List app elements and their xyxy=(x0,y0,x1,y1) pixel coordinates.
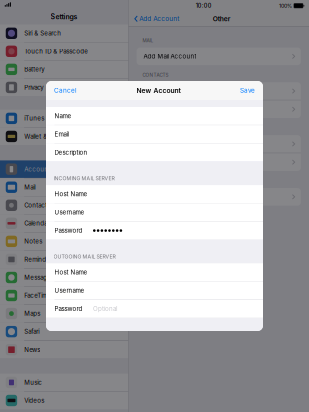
staticText: Username xyxy=(54,209,84,216)
staticText: Save xyxy=(240,87,255,94)
button[interactable]: Mail xyxy=(0,178,128,196)
staticText: Reminders xyxy=(24,256,55,263)
button[interactable]: Messages xyxy=(0,269,128,286)
staticText: Safari xyxy=(24,328,39,335)
button[interactable]: Maps xyxy=(0,305,128,322)
button[interactable]: News xyxy=(0,341,128,358)
staticText: Password xyxy=(54,305,82,312)
button[interactable]: Add Account xyxy=(129,13,179,25)
button[interactable]: Calendar xyxy=(0,215,128,232)
staticText: Contacts xyxy=(24,202,50,209)
button[interactable]: Add CardDAV Account xyxy=(137,100,301,118)
staticText: MAIL xyxy=(143,38,154,43)
button[interactable]: iTunes & App Store xyxy=(0,110,128,127)
button[interactable]: Add macOS Server Account xyxy=(137,188,301,206)
button[interactable]: Music xyxy=(0,374,128,391)
button[interactable]: Contacts xyxy=(0,196,128,214)
staticText: Host Name xyxy=(54,268,87,276)
staticText: Videos xyxy=(24,397,44,404)
button[interactable]: Add LDAP Account xyxy=(137,82,301,100)
button[interactable]: FaceTime xyxy=(0,287,128,304)
staticText: Privacy xyxy=(24,84,43,91)
staticText: Add CardDAV Account xyxy=(143,105,210,113)
button[interactable]: Safari xyxy=(0,323,128,340)
button[interactable]: Siri & Search xyxy=(0,24,128,42)
button[interactable]: Accounts & Passwords xyxy=(0,160,128,178)
staticText: Messages xyxy=(24,274,54,281)
staticText: Touch ID & Passcode xyxy=(24,48,88,55)
button[interactable]: Add Subscribed Calendar xyxy=(137,153,301,171)
button[interactable]: Add Mail Account xyxy=(137,47,301,65)
button[interactable]: Touch ID & Passcode xyxy=(0,42,128,60)
staticText: Add CalDAV Account xyxy=(143,140,205,148)
button[interactable]: Battery xyxy=(0,61,128,78)
button[interactable]: Videos xyxy=(0,392,128,409)
staticText: Name xyxy=(54,112,71,120)
button[interactable]: Wallet & Apple Pay xyxy=(0,128,128,145)
staticText: Email xyxy=(54,130,68,138)
staticText: Add Account xyxy=(139,15,179,23)
staticText: Mail xyxy=(24,183,35,191)
staticText: Music xyxy=(24,379,42,386)
button[interactable]: Reminders xyxy=(0,251,128,268)
staticText: CONTACTS xyxy=(143,72,169,78)
staticText: FaceTime xyxy=(24,292,51,299)
staticText: Wallet & Apple Pay xyxy=(24,133,78,140)
staticText: 100% xyxy=(279,2,292,9)
staticText: INCOMING MAIL SERVER xyxy=(53,175,114,181)
staticText: Cancel xyxy=(54,87,77,94)
staticText: OUTGOING MAIL SERVER xyxy=(53,253,115,260)
staticText: News xyxy=(24,346,40,353)
button[interactable]: Add CalDAV Account xyxy=(137,135,301,153)
staticText: Host Name xyxy=(54,190,87,198)
staticText: Accounts & Passwords xyxy=(24,165,92,173)
button[interactable]: Notes xyxy=(0,233,128,250)
staticText: Username xyxy=(54,287,84,294)
staticText: Other xyxy=(213,15,231,23)
staticText: Siri & Search xyxy=(24,30,61,37)
staticText: Description xyxy=(54,149,87,156)
staticText: Password xyxy=(54,227,82,234)
staticText: Add LDAP Account xyxy=(143,87,200,95)
staticText: 10:00 xyxy=(196,2,212,9)
staticText: Maps xyxy=(24,310,40,317)
staticText: Optional xyxy=(93,305,117,312)
staticText: Add Subscribed Calendar xyxy=(143,158,218,166)
button[interactable]: Save xyxy=(240,83,263,98)
staticText: Add Mail Account xyxy=(143,53,196,60)
staticText: Notes xyxy=(24,238,42,245)
button[interactable]: Cancel xyxy=(46,83,77,98)
button[interactable]: Privacy xyxy=(0,79,128,96)
staticText: New Account xyxy=(136,86,180,95)
staticText: iTunes & App Store xyxy=(24,115,82,122)
staticText: Calendar xyxy=(24,220,49,227)
staticText: Settings xyxy=(50,13,77,21)
staticText: Battery xyxy=(24,66,44,73)
